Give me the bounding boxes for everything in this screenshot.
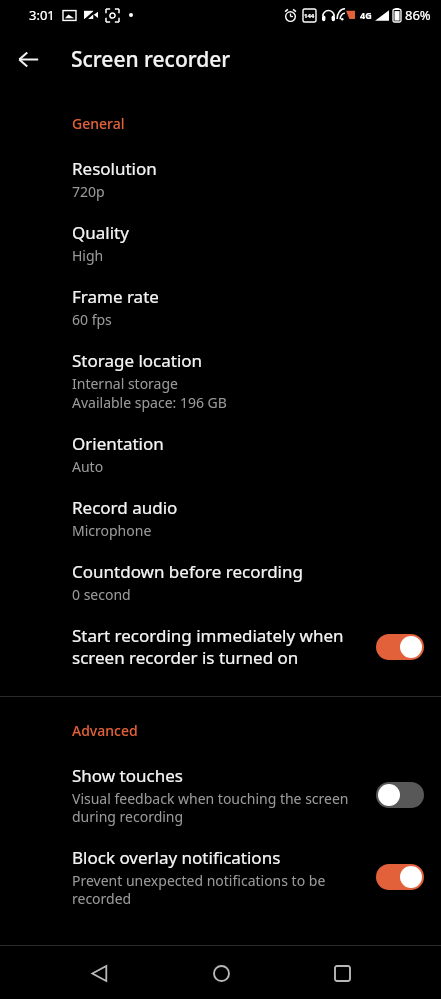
staticText: Storage location	[72, 349, 203, 372]
staticText: Screen recorder	[71, 45, 231, 74]
staticText: Microphone	[72, 521, 152, 540]
staticText: Quality	[72, 221, 129, 244]
staticText: Available space: 196 GB	[72, 393, 227, 412]
button[interactable]: Quality	[0, 214, 441, 278]
staticText: Record audio	[72, 496, 178, 519]
staticText: Prevent unexpected notifications to be r…	[72, 871, 326, 908]
button[interactable]: Back	[76, 950, 122, 996]
staticText: High	[72, 246, 104, 265]
staticText: Resolution	[72, 157, 157, 180]
staticText: 4G	[360, 9, 372, 21]
staticText: Auto	[72, 457, 104, 476]
button[interactable]: Countdown before recording	[0, 553, 441, 617]
staticText: 86%	[405, 6, 431, 24]
button[interactable]: On	[375, 862, 425, 892]
staticText: Orientation	[72, 432, 164, 455]
staticText: Countdown before recording	[72, 560, 303, 583]
button[interactable]: Start recording immediately when screen …	[0, 617, 441, 682]
staticText: Internal storage	[72, 374, 178, 393]
button[interactable]: Record audio	[0, 489, 441, 553]
button[interactable]: On	[375, 632, 425, 662]
staticText: 720p	[72, 182, 105, 201]
staticText: 0 second	[72, 585, 131, 604]
button[interactable]: Navigate up	[9, 40, 47, 78]
staticText: 60 fps	[72, 310, 112, 329]
staticText: Visual feedback when touching the screen…	[72, 789, 349, 826]
staticText: Show touches	[72, 764, 183, 787]
button[interactable]: Block overlay notifications	[0, 839, 441, 921]
staticText: General	[72, 114, 125, 133]
button[interactable]: Show touches	[0, 757, 441, 839]
button[interactable]: Off	[375, 780, 425, 810]
staticText: 3:01	[29, 6, 55, 24]
staticText: Start recording immediately when screen …	[72, 624, 344, 669]
staticText: 144	[304, 12, 315, 20]
staticText: Frame rate	[72, 285, 159, 308]
button[interactable]: Storage location	[0, 342, 441, 425]
button[interactable]: Home	[198, 950, 244, 996]
button[interactable]: Recent apps	[319, 950, 365, 996]
staticText: Block overlay notifications	[72, 846, 281, 869]
button[interactable]: Resolution	[0, 150, 441, 214]
button[interactable]: Orientation	[0, 425, 441, 489]
staticText: Advanced	[72, 721, 138, 740]
button[interactable]: Frame rate	[0, 278, 441, 342]
